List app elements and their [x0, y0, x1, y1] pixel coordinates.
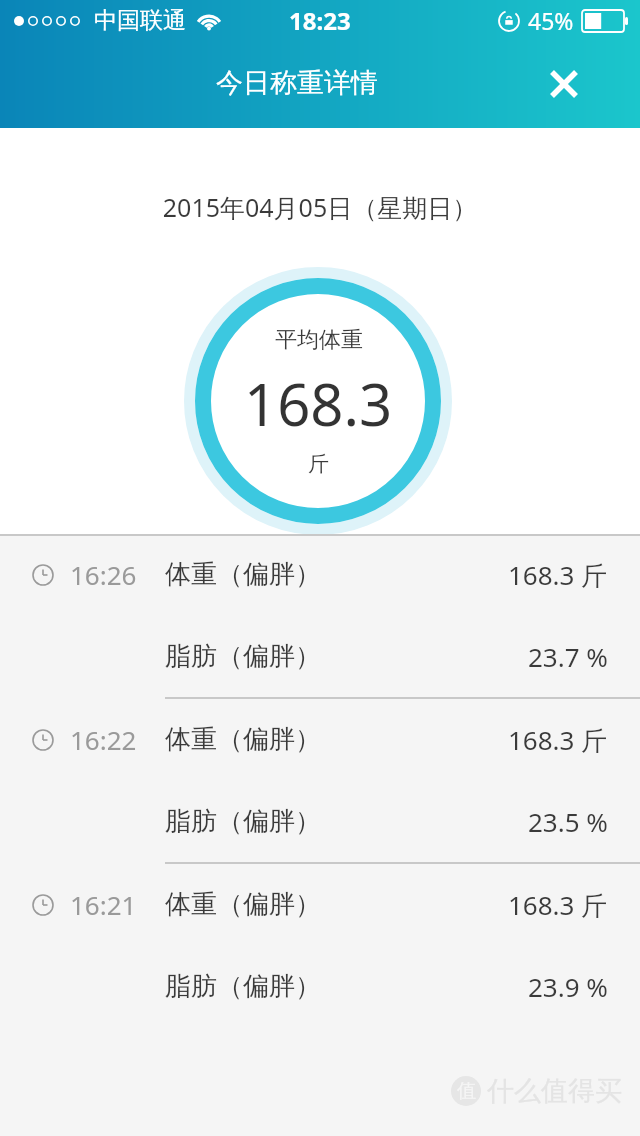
staticText: 18:23: [289, 4, 351, 37]
staticText: 16:22: [70, 722, 137, 757]
staticText: 168.3: [244, 364, 393, 443]
staticText: 2015年04月05日（星期日）: [0, 190, 640, 224]
button[interactable]: Close: [536, 56, 592, 112]
staticText: 斤: [308, 451, 329, 477]
staticText: 168.3 斤: [508, 722, 608, 758]
staticText: 体重（偏胖）: [165, 558, 321, 591]
staticText: 23.5 %: [528, 804, 608, 839]
staticText: 168.3 斤: [508, 887, 608, 923]
staticText: 脂肪（偏胖）: [165, 970, 321, 1003]
staticText: 什么值得买: [487, 1074, 622, 1108]
staticText: 23.9 %: [528, 969, 608, 1004]
staticText: 脂肪（偏胖）: [165, 640, 321, 673]
button[interactable]: 16:26: [0, 534, 640, 699]
staticText: 16:26: [70, 557, 137, 592]
button[interactable]: 16:22: [0, 699, 640, 864]
staticText: 体重（偏胖）: [165, 723, 321, 756]
button[interactable]: 16:21: [0, 864, 640, 1029]
staticText: 平均体重: [275, 326, 363, 354]
staticText: 体重（偏胖）: [165, 888, 321, 921]
staticText: 23.7 %: [528, 639, 608, 674]
staticText: 中国联通: [94, 6, 186, 35]
staticText: 今日称重详情: [216, 66, 378, 100]
staticText: 45%: [528, 5, 574, 36]
staticText: 值: [457, 1079, 476, 1103]
staticText: 168.3 斤: [508, 557, 608, 593]
staticText: 16:21: [70, 887, 137, 922]
staticText: 脂肪（偏胖）: [165, 805, 321, 838]
